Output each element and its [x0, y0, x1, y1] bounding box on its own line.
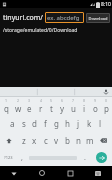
- staticText: k: [87, 118, 92, 129]
- button[interactable]: v: [51, 132, 62, 149]
- button[interactable]: j: [73, 115, 84, 132]
- button[interactable]: 8: [79, 97, 90, 115]
- button[interactable]: 0: [101, 97, 112, 115]
- staticText: y: [60, 103, 65, 114]
- staticText: m: [86, 135, 94, 146]
- staticText: x: [32, 135, 37, 146]
- staticText: s: [22, 118, 26, 129]
- staticText: ?123: [4, 155, 13, 160]
- staticText: w: [15, 103, 22, 114]
- staticText: p: [104, 103, 109, 114]
- staticText: a: [10, 118, 15, 129]
- button[interactable]: a: [7, 115, 18, 132]
- button[interactable]: Recents: [56, 166, 84, 180]
- staticText: d: [32, 118, 37, 129]
- button[interactable]: x: [29, 132, 40, 149]
- button[interactable]: Voice input: [102, 88, 110, 96]
- button[interactable]: Hide keyboard: [0, 166, 28, 180]
- staticText: u: [71, 103, 76, 114]
- staticText: c: [44, 135, 48, 146]
- button[interactable]: f: [40, 115, 51, 132]
- staticText: h: [65, 118, 70, 129]
- staticText: f: [44, 118, 47, 129]
- button[interactable]: g: [51, 115, 62, 132]
- button[interactable]: 5: [46, 97, 57, 115]
- button[interactable]: s: [18, 115, 29, 132]
- button[interactable]: 9: [90, 97, 101, 115]
- staticText: q: [4, 103, 9, 114]
- button[interactable]: Backspace: [95, 132, 112, 149]
- button[interactable]: [27, 149, 79, 166]
- staticText: 5: [50, 98, 53, 103]
- button[interactable]: Download: [86, 13, 110, 23]
- button[interactable]: 7: [68, 97, 79, 115]
- button[interactable]: Enter: [90, 149, 112, 166]
- staticText: 2: [17, 98, 20, 103]
- button[interactable]: c: [40, 132, 51, 149]
- button[interactable]: b: [62, 132, 73, 149]
- staticText: g: [54, 118, 59, 129]
- staticText: 6: [61, 98, 64, 103]
- staticText: n: [76, 135, 81, 146]
- button[interactable]: Home: [28, 166, 56, 180]
- button[interactable]: d: [29, 115, 40, 132]
- staticText: ex. abcdefg: [47, 14, 80, 22]
- button[interactable]: n: [73, 132, 84, 149]
- button[interactable]: h: [62, 115, 73, 132]
- staticText: b: [65, 135, 70, 146]
- button[interactable]: z: [18, 132, 29, 149]
- staticText: 8:10: [101, 1, 111, 8]
- staticText: tinyurl.com/: [3, 13, 43, 23]
- staticText: j: [77, 118, 80, 129]
- staticText: 8: [83, 98, 86, 103]
- button[interactable]: l: [95, 115, 106, 132]
- staticText: /storage/emulated/0/Download: [3, 27, 78, 34]
- button[interactable]: ,: [16, 149, 27, 166]
- button[interactable]: 3: [24, 97, 35, 115]
- button[interactable]: 1: [0, 97, 12, 115]
- button[interactable]: 4: [35, 97, 46, 115]
- staticText: 0: [105, 98, 108, 103]
- staticText: z: [22, 135, 26, 146]
- staticText: o: [93, 103, 98, 114]
- button[interactable]: ex. abcdefg: [45, 12, 84, 23]
- button[interactable]: k: [84, 115, 95, 132]
- staticText: 3: [28, 98, 31, 103]
- button[interactable]: ?123: [0, 149, 16, 166]
- staticText: t: [50, 103, 53, 114]
- button[interactable]: .: [79, 149, 90, 166]
- staticText: 4: [40, 98, 43, 103]
- button[interactable]: 6: [57, 97, 68, 115]
- button[interactable]: Switch keyboard: [84, 166, 112, 180]
- staticText: e: [27, 103, 32, 114]
- staticText: r: [39, 103, 43, 114]
- staticText: 9: [94, 98, 97, 103]
- staticText: ,: [21, 153, 23, 163]
- staticText: i: [83, 103, 86, 114]
- staticText: l: [99, 118, 102, 129]
- staticText: 7: [72, 98, 75, 103]
- staticText: v: [54, 135, 59, 146]
- staticText: Download: [88, 16, 108, 21]
- staticText: .: [84, 153, 86, 163]
- button[interactable]: m: [84, 132, 95, 149]
- button[interactable]: Shift: [0, 132, 18, 149]
- button[interactable]: 2: [12, 97, 24, 115]
- staticText: 1: [5, 98, 8, 103]
